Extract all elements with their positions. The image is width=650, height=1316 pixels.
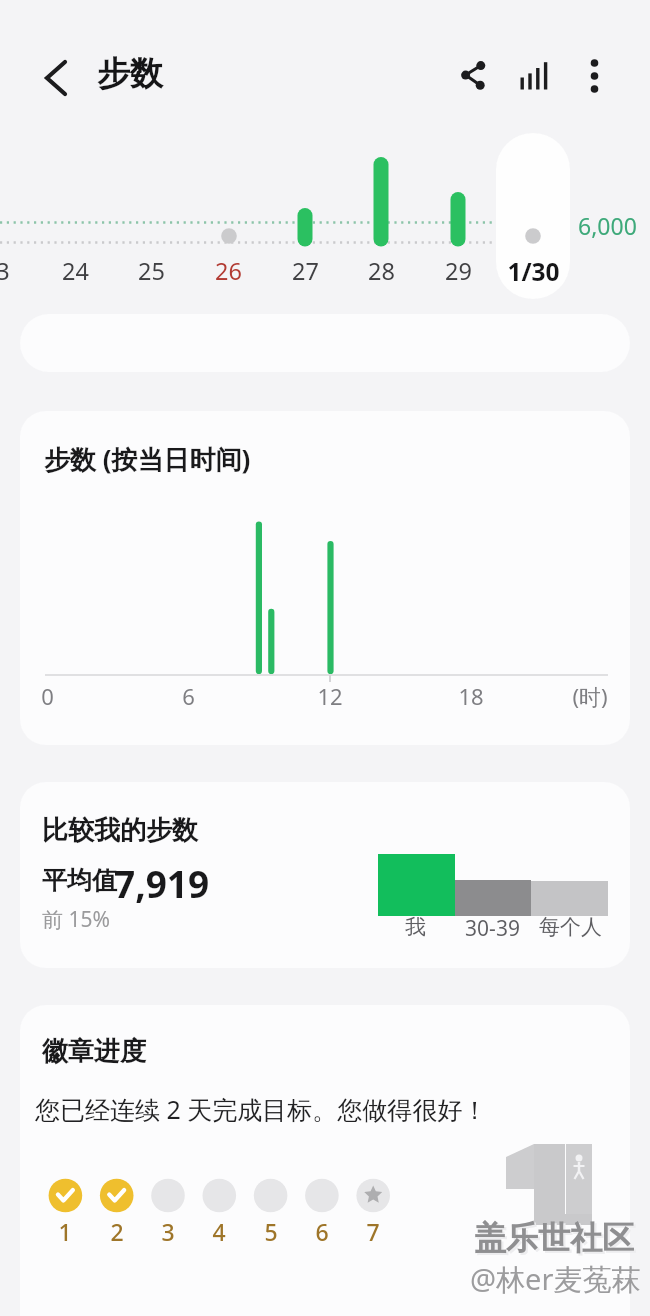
staticText: 3 (0, 255, 10, 287)
staticText: 比较我的步数 (42, 814, 198, 847)
button[interactable] (30, 52, 80, 102)
button[interactable]: 步数 (按当日时间) (20, 411, 630, 745)
staticText: 2 (110, 1216, 124, 1247)
staticText: 1 (58, 1216, 72, 1247)
button[interactable] (510, 50, 560, 100)
staticText: 27 (292, 255, 319, 287)
staticText: 6 (315, 1216, 329, 1247)
staticText: 6 (182, 681, 195, 711)
staticText: 每个人 (539, 914, 602, 940)
staticText: 18 (458, 681, 484, 711)
staticText: 28 (368, 255, 395, 287)
staticText: 盖乐世社区 (474, 1218, 634, 1258)
staticText: (时) (572, 681, 608, 711)
staticText: 25 (138, 255, 165, 287)
staticText: 6,000 (578, 210, 637, 241)
staticText: 29 (445, 255, 472, 287)
staticText: 12 (317, 681, 343, 711)
staticText: 平均值 (42, 865, 117, 896)
button[interactable] (448, 51, 498, 101)
staticText: 盖乐世社区 (476, 1220, 636, 1260)
staticText: 24 (62, 255, 89, 287)
staticText: 7 (366, 1216, 380, 1247)
staticText: 7,919 (114, 858, 210, 908)
staticText: 您已经连续 2 天完成目标。您做得很好！ (35, 1092, 488, 1126)
staticText: 3 (161, 1216, 175, 1247)
button[interactable]: 比较我的步数 (20, 782, 630, 968)
button[interactable] (496, 133, 570, 299)
staticText: 1/30 (507, 255, 560, 288)
button[interactable]: 徽章进度 (20, 1005, 630, 1316)
staticText: 我 (405, 914, 426, 940)
staticText: 徽章进度 (42, 1035, 146, 1068)
staticText: 30-39 (465, 914, 520, 943)
staticText: 4 (212, 1216, 226, 1247)
staticText: 26 (215, 255, 242, 287)
staticText: 5 (264, 1216, 278, 1247)
button[interactable] (570, 50, 620, 100)
staticText: 步数 (97, 53, 163, 95)
staticText: 0 (41, 681, 54, 711)
staticText: 步数 (按当日时间) (44, 441, 251, 477)
staticText: 前 15% (42, 905, 110, 934)
staticText: @林er麦菟菻 (470, 1259, 641, 1299)
